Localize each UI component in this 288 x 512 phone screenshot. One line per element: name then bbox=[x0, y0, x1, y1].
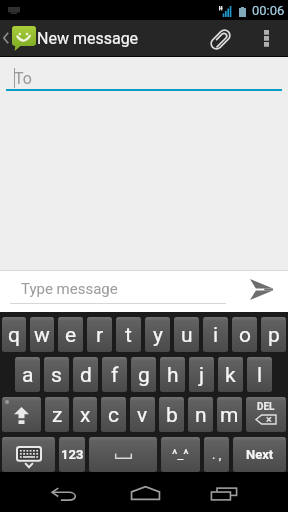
staticText: n bbox=[195, 403, 207, 428]
staticText: l bbox=[257, 363, 263, 388]
button[interactable]: s bbox=[44, 357, 69, 392]
button[interactable]: To bbox=[0, 57, 288, 91]
staticText: New message bbox=[37, 29, 139, 48]
button[interactable]: r bbox=[87, 317, 112, 352]
staticText: f bbox=[111, 363, 119, 388]
staticText: g bbox=[138, 363, 150, 388]
button[interactable]: Next bbox=[233, 437, 286, 472]
staticText: i bbox=[213, 323, 219, 348]
button[interactable]: e bbox=[58, 317, 83, 352]
button[interactable]: Recent apps bbox=[192, 472, 256, 512]
button[interactable]: More options bbox=[245, 20, 288, 56]
button[interactable]: h bbox=[160, 357, 185, 392]
staticText: m bbox=[220, 403, 239, 428]
button[interactable]: m bbox=[217, 397, 242, 432]
button[interactable]: x bbox=[73, 397, 97, 432]
staticText: Next bbox=[246, 447, 274, 462]
button[interactable]: DEL bbox=[246, 397, 286, 432]
button[interactable]: ^_^ bbox=[161, 437, 200, 472]
button[interactable] bbox=[2, 437, 55, 472]
staticText: v bbox=[137, 403, 148, 428]
staticText: e bbox=[65, 323, 77, 348]
button[interactable]: Navigate up bbox=[0, 20, 37, 56]
staticText: ^_^ bbox=[172, 447, 189, 462]
button[interactable]: j bbox=[189, 357, 214, 392]
staticText: b bbox=[166, 403, 178, 428]
staticText: . , bbox=[212, 447, 222, 462]
staticText: To bbox=[14, 69, 32, 88]
button[interactable]: t bbox=[116, 317, 141, 352]
button[interactable]: b bbox=[159, 397, 184, 432]
staticText: x bbox=[80, 403, 91, 428]
staticText: y bbox=[153, 323, 163, 348]
button[interactable]: o bbox=[232, 317, 257, 352]
staticText: o bbox=[239, 323, 251, 348]
button[interactable]: q bbox=[2, 317, 26, 352]
staticText: h bbox=[167, 363, 179, 388]
button[interactable]: y bbox=[145, 317, 170, 352]
staticText: r bbox=[96, 323, 104, 348]
staticText: p bbox=[268, 323, 280, 348]
button[interactable]: f bbox=[102, 357, 127, 392]
button[interactable]: l bbox=[247, 357, 272, 392]
button[interactable]: . , bbox=[204, 437, 229, 472]
staticText: 00:06 bbox=[252, 3, 285, 18]
button[interactable]: a bbox=[15, 357, 40, 392]
button[interactable]: p bbox=[261, 317, 286, 352]
button[interactable]: Send bbox=[227, 271, 288, 312]
staticText: Type message bbox=[21, 280, 118, 298]
button[interactable]: Attach bbox=[201, 20, 245, 56]
button[interactable]: i bbox=[203, 317, 228, 352]
staticText: z bbox=[52, 403, 63, 428]
button[interactable]: d bbox=[73, 357, 98, 392]
staticText: t bbox=[125, 323, 132, 348]
button[interactable]: c bbox=[101, 397, 126, 432]
staticText: u bbox=[181, 323, 193, 348]
button[interactable]: 123 bbox=[59, 437, 85, 472]
staticText: s bbox=[51, 363, 62, 388]
staticText: k bbox=[225, 363, 236, 388]
staticText: q bbox=[8, 323, 20, 348]
button[interactable]: g bbox=[131, 357, 156, 392]
button[interactable]: k bbox=[218, 357, 243, 392]
staticText: d bbox=[80, 363, 92, 388]
button[interactable] bbox=[2, 397, 41, 432]
staticText: c bbox=[108, 403, 119, 428]
staticText: 123 bbox=[61, 447, 84, 462]
button[interactable]: Home bbox=[113, 472, 177, 512]
button[interactable]: u bbox=[174, 317, 199, 352]
staticText: w bbox=[34, 323, 50, 348]
button[interactable] bbox=[89, 437, 157, 472]
staticText: a bbox=[22, 363, 34, 388]
staticText: j bbox=[199, 363, 205, 388]
button[interactable]: n bbox=[188, 397, 213, 432]
button[interactable]: Type message bbox=[0, 271, 227, 312]
button[interactable]: v bbox=[130, 397, 155, 432]
button[interactable]: z bbox=[45, 397, 69, 432]
button[interactable]: Back bbox=[32, 472, 96, 512]
button[interactable]: w bbox=[30, 317, 54, 352]
staticText: DEL bbox=[257, 401, 275, 413]
